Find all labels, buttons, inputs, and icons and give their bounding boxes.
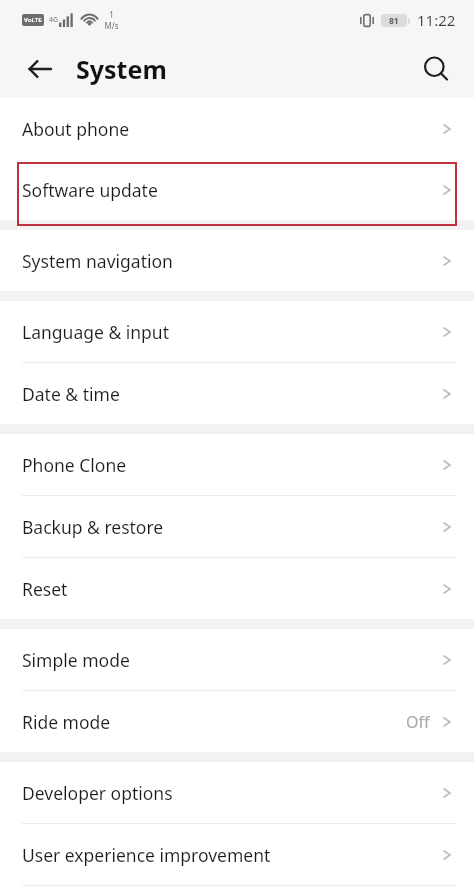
button[interactable]: Back (14, 43, 66, 95)
staticText: 1 (109, 9, 114, 20)
button[interactable]: Software update (0, 159, 474, 220)
staticText: Simple mode (22, 648, 130, 672)
staticText: 81 (389, 15, 399, 26)
staticText: Ride mode (22, 710, 111, 734)
button[interactable]: Phone Clone (0, 434, 474, 495)
button[interactable]: Developer options (0, 762, 474, 823)
staticText: M/s (104, 20, 119, 31)
staticText: 11:22 (417, 10, 456, 30)
staticText: Date & time (22, 382, 120, 406)
staticText: User experience improvement (22, 843, 271, 867)
button[interactable]: Reset (0, 558, 474, 619)
staticText: 4G (49, 15, 59, 25)
staticText: Phone Clone (22, 453, 127, 477)
button[interactable]: User experience improvement (0, 824, 474, 885)
button[interactable]: Search (410, 43, 462, 95)
button[interactable]: Ride mode (0, 691, 474, 752)
staticText: System (76, 52, 167, 86)
button[interactable]: Backup & restore (0, 496, 474, 557)
button[interactable]: Language & input (0, 301, 474, 362)
staticText: Software update (22, 178, 158, 202)
staticText: About phone (22, 117, 130, 141)
button[interactable]: Simple mode (0, 629, 474, 690)
staticText: Developer options (22, 781, 173, 805)
button[interactable]: System navigation (0, 230, 474, 291)
button[interactable]: About phone (0, 98, 474, 159)
staticText: Reset (22, 577, 68, 601)
button[interactable]: Date & time (0, 363, 474, 424)
staticText: Backup & restore (22, 515, 164, 539)
staticText: Off (406, 711, 430, 733)
staticText: System navigation (22, 249, 173, 273)
staticText: Language & input (22, 320, 169, 344)
staticText: VoLTE (24, 16, 42, 24)
